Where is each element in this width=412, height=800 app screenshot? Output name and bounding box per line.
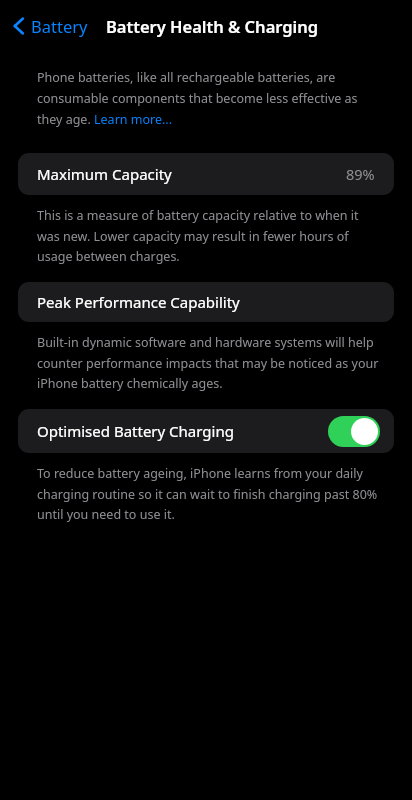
- staticText: Optimised Battery Charging: [37, 421, 234, 441]
- staticText: Built-in dynamic software and hardware s…: [37, 334, 382, 391]
- staticText: To reduce battery ageing, iPhone learns …: [37, 465, 382, 522]
- staticText: Maximum Capacity: [37, 164, 172, 184]
- button[interactable]: Optimised Battery Charging toggle, on: [328, 416, 380, 447]
- button[interactable]: Peak Performance Capability: [18, 282, 394, 322]
- button[interactable]: Phone batteries, like all rechargeable b…: [37, 69, 384, 128]
- staticText: This is a measure of battery capacity re…: [37, 207, 382, 264]
- staticText: Peak Performance Capability: [37, 292, 240, 312]
- button[interactable]: Maximum Capacity: [18, 153, 394, 195]
- button[interactable]: Optimised Battery Charging: [18, 409, 394, 453]
- staticText: 89%: [346, 164, 375, 184]
- button[interactable]: Battery: [10, 11, 90, 41]
- staticText: Battery Health & Charging: [106, 15, 319, 37]
- staticText: Battery: [31, 15, 88, 37]
